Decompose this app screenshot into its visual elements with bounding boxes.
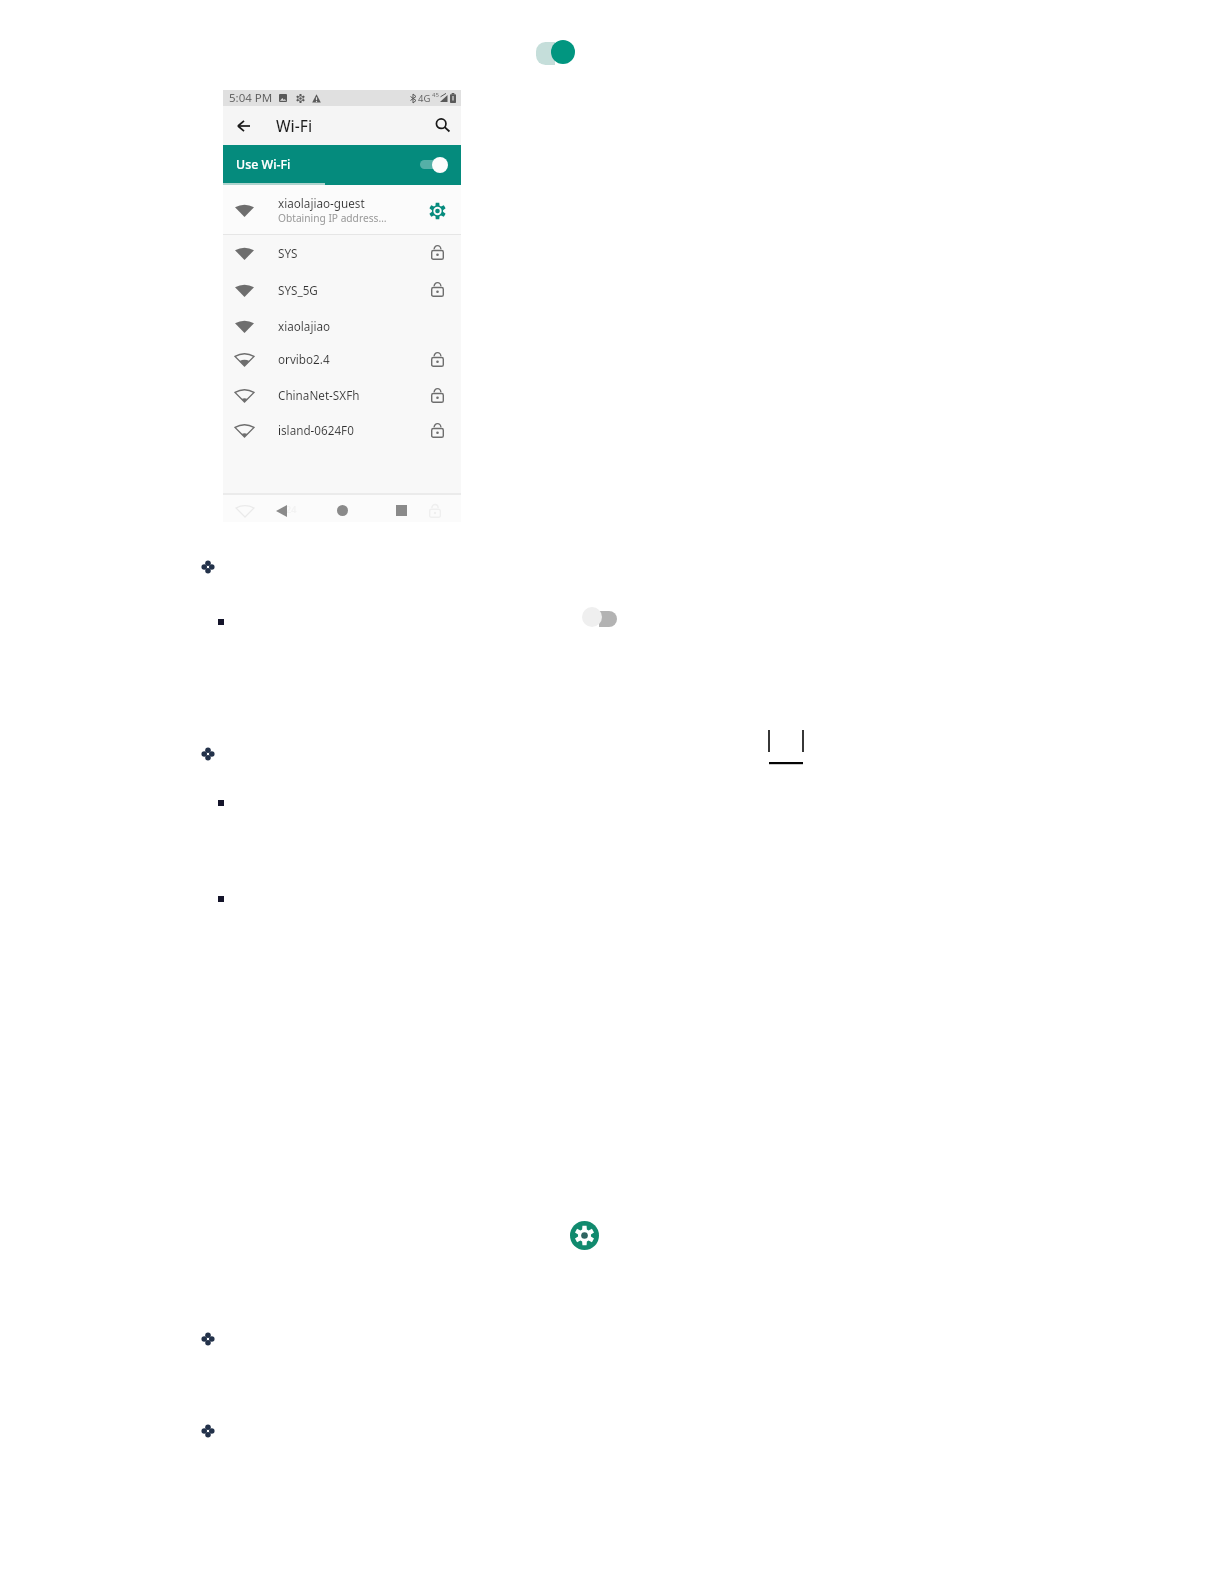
button[interactable]: Use Wi-Fi, on — [420, 156, 448, 173]
button[interactable]: Switch on — [533, 39, 577, 65]
staticText: xiaolajiao — [278, 318, 331, 334]
button[interactable]: SYS_5G — [223, 271, 461, 308]
button[interactable]: Back — [270, 497, 292, 524]
button[interactable]: Recent apps — [390, 497, 412, 524]
button[interactable]: Back — [223, 106, 263, 145]
button[interactable]: xiaolajiao — [223, 308, 461, 344]
staticText: Wi-Fi — [276, 115, 313, 136]
staticText: xiaolajiao-guest — [278, 195, 365, 211]
button[interactable]: island-0624F0 — [223, 412, 461, 448]
staticText: ChinaNet-SXFh — [278, 387, 360, 403]
staticText: island-0624F0 — [278, 422, 354, 438]
staticText: Use Wi-Fi — [236, 156, 291, 173]
staticText: 5:04 PM — [229, 90, 273, 106]
button[interactable]: Search — [425, 106, 461, 145]
staticText: orvibo2.4 — [278, 351, 330, 367]
button[interactable]: orvibo2.4 — [223, 341, 461, 377]
button[interactable]: Switch off — [577, 593, 621, 625]
button[interactable]: Use Wi-Fi — [223, 145, 461, 183]
button[interactable]: xiaolajiao-guest — [223, 185, 461, 234]
button[interactable]: Home — [331, 497, 353, 524]
staticText: Obtaining IP address… — [278, 211, 387, 225]
button[interactable]: Settings — [570, 1221, 599, 1250]
button[interactable]: Network settings — [425, 199, 449, 223]
staticText: 45 — [432, 91, 439, 99]
button[interactable]: ChinaNet-SXFh — [223, 377, 461, 413]
button[interactable]: SYS — [223, 234, 461, 271]
staticText: SYS — [278, 245, 298, 261]
staticText: 24 — [286, 503, 297, 515]
staticText: 4G — [418, 92, 431, 105]
staticText: SYS_5G — [278, 282, 318, 298]
